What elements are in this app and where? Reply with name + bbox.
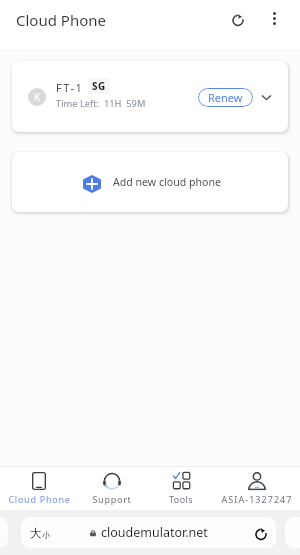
button[interactable]: Expand details — [258, 89, 274, 105]
staticText: FT-1 — [56, 80, 84, 95]
button[interactable]: Renew — [198, 88, 253, 107]
staticText: SG — [92, 79, 106, 93]
button[interactable]: K — [12, 61, 288, 132]
button[interactable]: ASIA-1327247 — [221, 467, 293, 510]
button[interactable]: Tools — [145, 467, 217, 510]
staticText: Renew — [208, 90, 243, 105]
button[interactable]: Support — [76, 467, 148, 510]
button[interactable]: Cloud Phone — [3, 467, 75, 510]
button[interactable]: Text size — [30, 526, 50, 540]
staticText: 小 — [42, 530, 50, 540]
staticText: K — [34, 90, 41, 104]
button[interactable]: Refresh — [226, 7, 249, 30]
button[interactable]: More options — [263, 7, 286, 30]
staticText: Tools — [169, 493, 193, 505]
staticText: ASIA-1327247 — [221, 493, 293, 505]
staticText: 大 — [30, 526, 42, 540]
button[interactable]: Add new cloud phone — [12, 152, 288, 212]
staticText: Add new cloud phone — [113, 175, 221, 189]
staticText: Cloud Phone — [8, 493, 71, 505]
staticText: Time Left: 11H 59M — [56, 97, 146, 110]
button[interactable]: Reload page — [252, 524, 270, 542]
staticText: Cloud Phone — [16, 10, 106, 30]
staticText: Support — [92, 493, 132, 505]
button[interactable]: Text size — [21, 517, 276, 548]
staticText: cloudemulator.net — [101, 524, 208, 541]
